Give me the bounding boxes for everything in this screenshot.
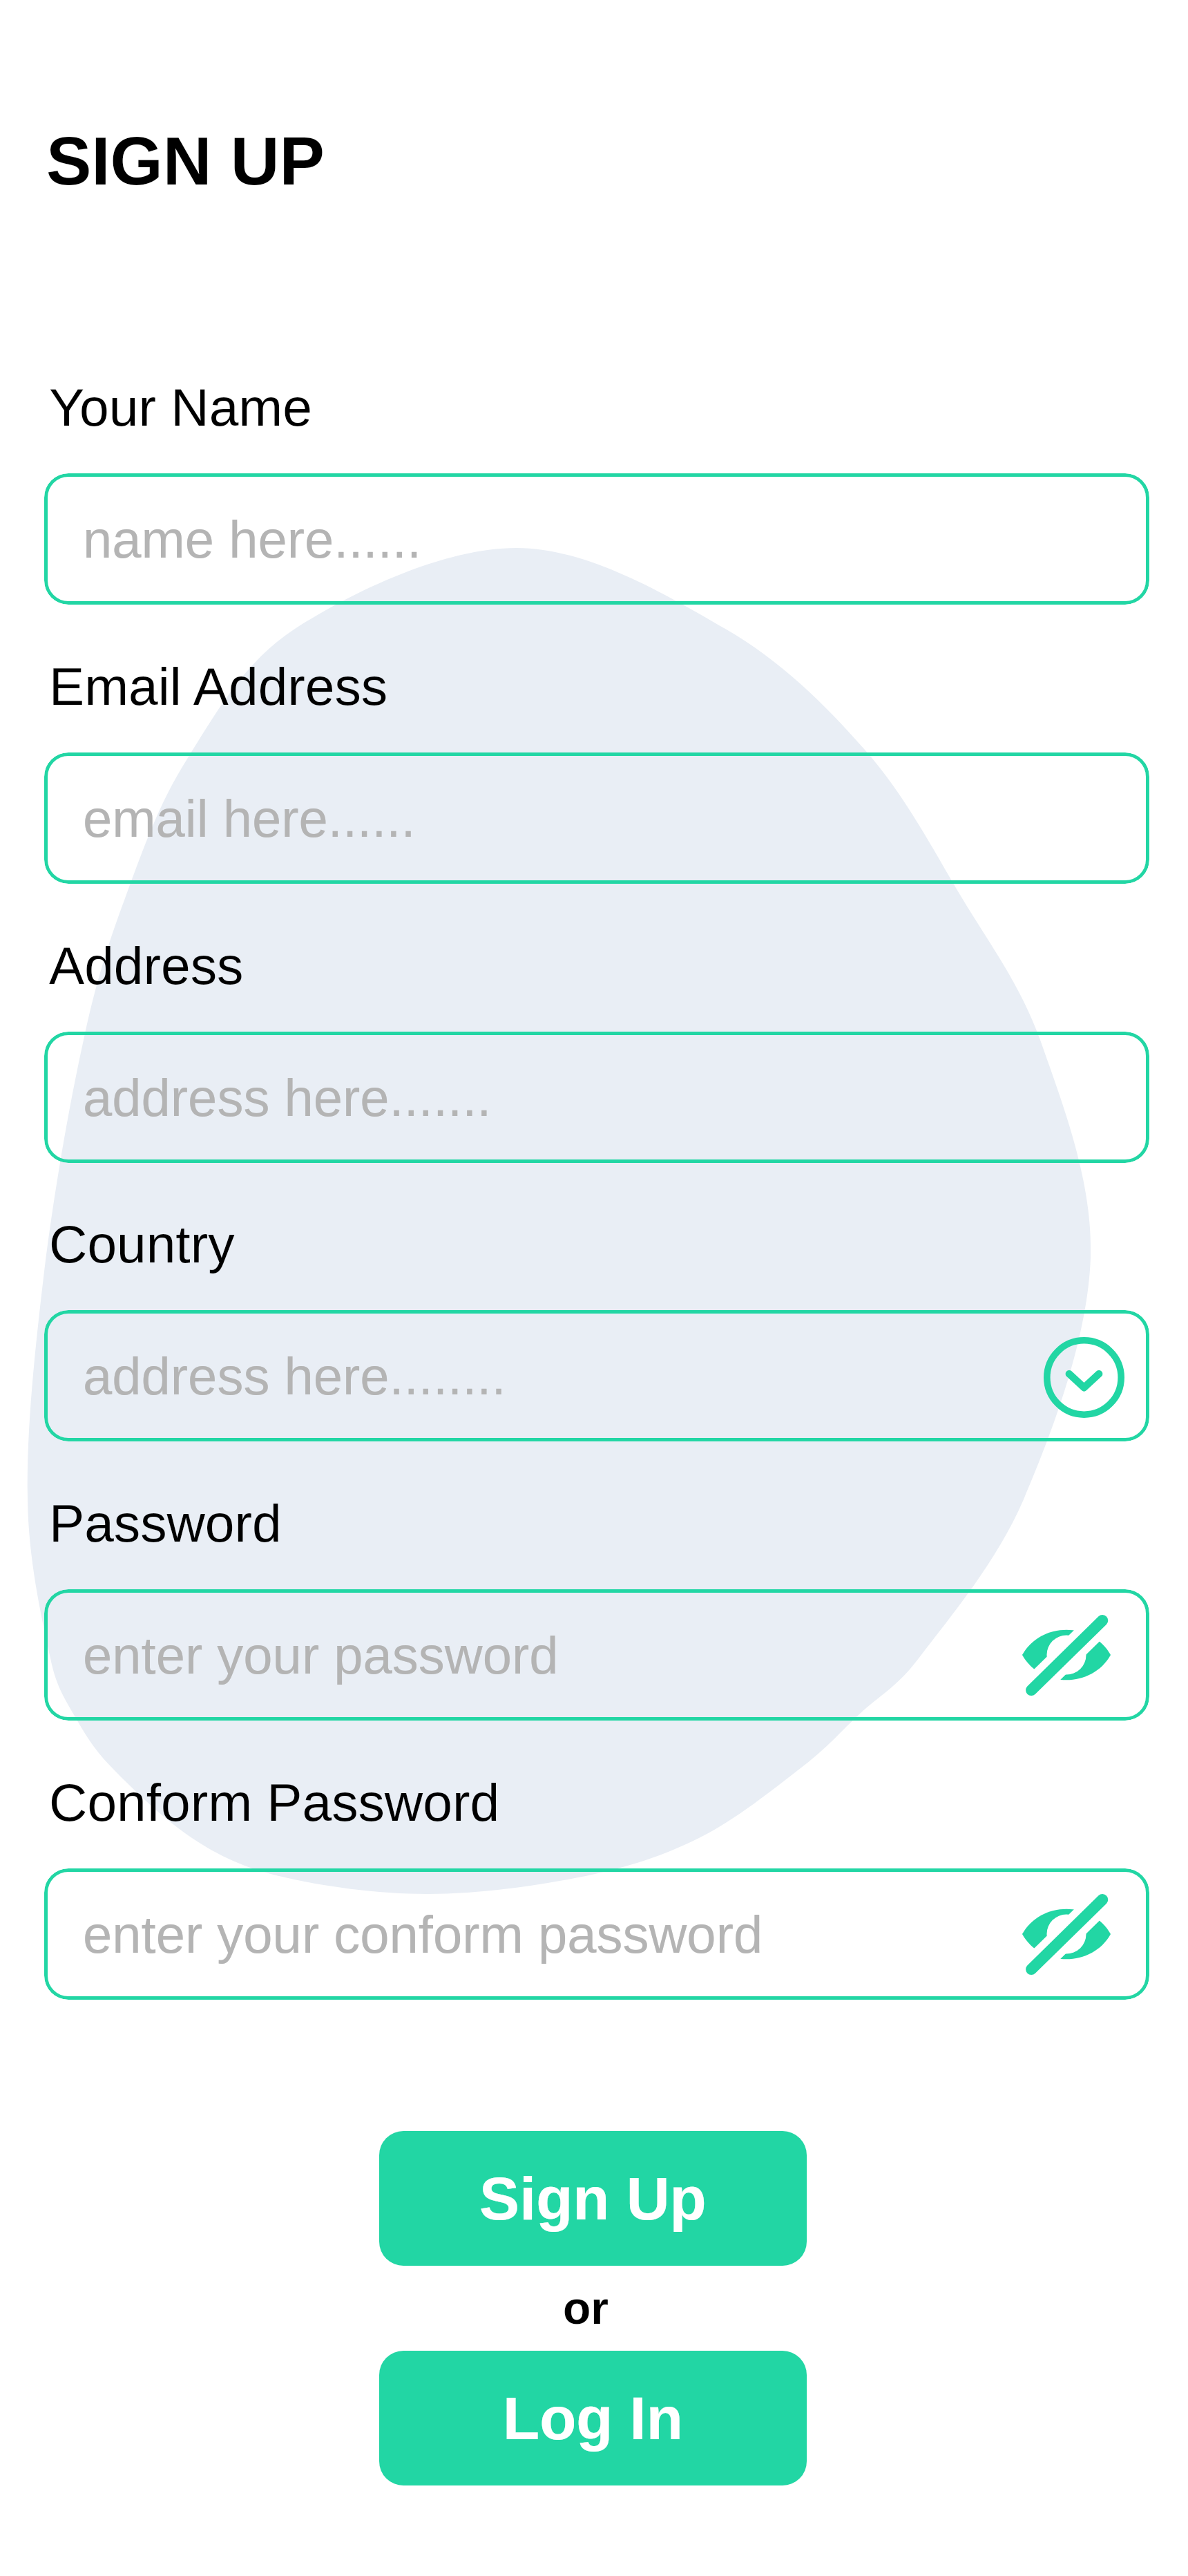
staticText: name here...... (83, 510, 422, 569)
staticText: Email Address (49, 657, 388, 717)
staticText: Password (49, 1494, 282, 1553)
staticText: Country (49, 1215, 235, 1274)
staticText: or (563, 2282, 609, 2333)
staticText: email here...... (83, 789, 416, 848)
button[interactable]: address here........ (44, 1310, 1149, 1441)
staticText: Address (49, 936, 244, 996)
button[interactable]: address here....... (44, 1032, 1149, 1163)
staticText: Conform Password (49, 1773, 500, 1832)
staticText: enter your conform password (83, 1905, 763, 1964)
button[interactable]: name here...... (44, 473, 1149, 605)
staticText: Sign Up (479, 2165, 707, 2232)
button[interactable]: Toggle password visibility (1021, 1895, 1112, 1973)
button[interactable]: enter your password (44, 1589, 1149, 1721)
button[interactable]: email here...... (44, 752, 1149, 884)
button[interactable]: enter your conform password (44, 1868, 1149, 2000)
button[interactable]: Toggle password visibility (1021, 1616, 1112, 1694)
staticText: Your Name (49, 378, 312, 437)
staticText: address here........ (83, 1347, 506, 1405)
button[interactable]: Log In (379, 2351, 807, 2485)
staticText: enter your password (83, 1626, 559, 1685)
button[interactable]: Open country dropdown (1044, 1337, 1124, 1418)
button[interactable]: Sign Up (379, 2131, 807, 2266)
staticText: address here....... (83, 1068, 492, 1127)
staticText: Log In (503, 2385, 683, 2452)
staticText: SIGN UP (46, 123, 325, 198)
